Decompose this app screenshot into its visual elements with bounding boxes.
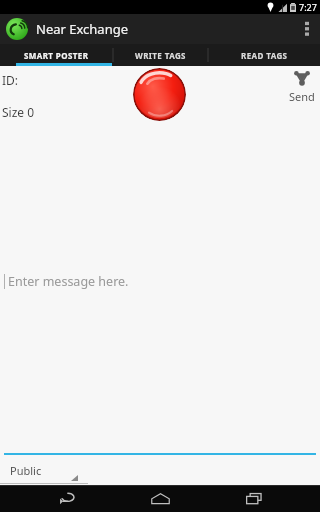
staticText: WRITE TAGS bbox=[135, 50, 186, 61]
staticText: 7:27 bbox=[299, 1, 317, 13]
staticText: Near Exchange bbox=[36, 20, 129, 38]
button[interactable]: Send bbox=[286, 68, 318, 104]
staticText: Public bbox=[10, 463, 42, 478]
button[interactable]: Public bbox=[0, 460, 88, 484]
button[interactable]: Enter message here. bbox=[0, 266, 320, 296]
button[interactable]: More options bbox=[294, 14, 320, 44]
staticText: Enter message here. bbox=[8, 273, 129, 290]
button[interactable]: WRITE TAGS bbox=[113, 44, 208, 66]
staticText: READ TAGS bbox=[241, 50, 288, 61]
button[interactable]: Back bbox=[38, 485, 94, 512]
staticText: Send bbox=[289, 89, 315, 104]
button[interactable]: SMART POSTER bbox=[0, 44, 113, 66]
staticText: ID: bbox=[2, 72, 19, 88]
button[interactable]: Abort bbox=[133, 68, 186, 121]
staticText: SMART POSTER bbox=[24, 50, 89, 61]
button[interactable]: READ TAGS bbox=[208, 44, 320, 66]
button[interactable]: Recent apps bbox=[226, 485, 282, 512]
button[interactable]: Home bbox=[132, 485, 188, 512]
staticText: Size 0 bbox=[2, 104, 35, 120]
